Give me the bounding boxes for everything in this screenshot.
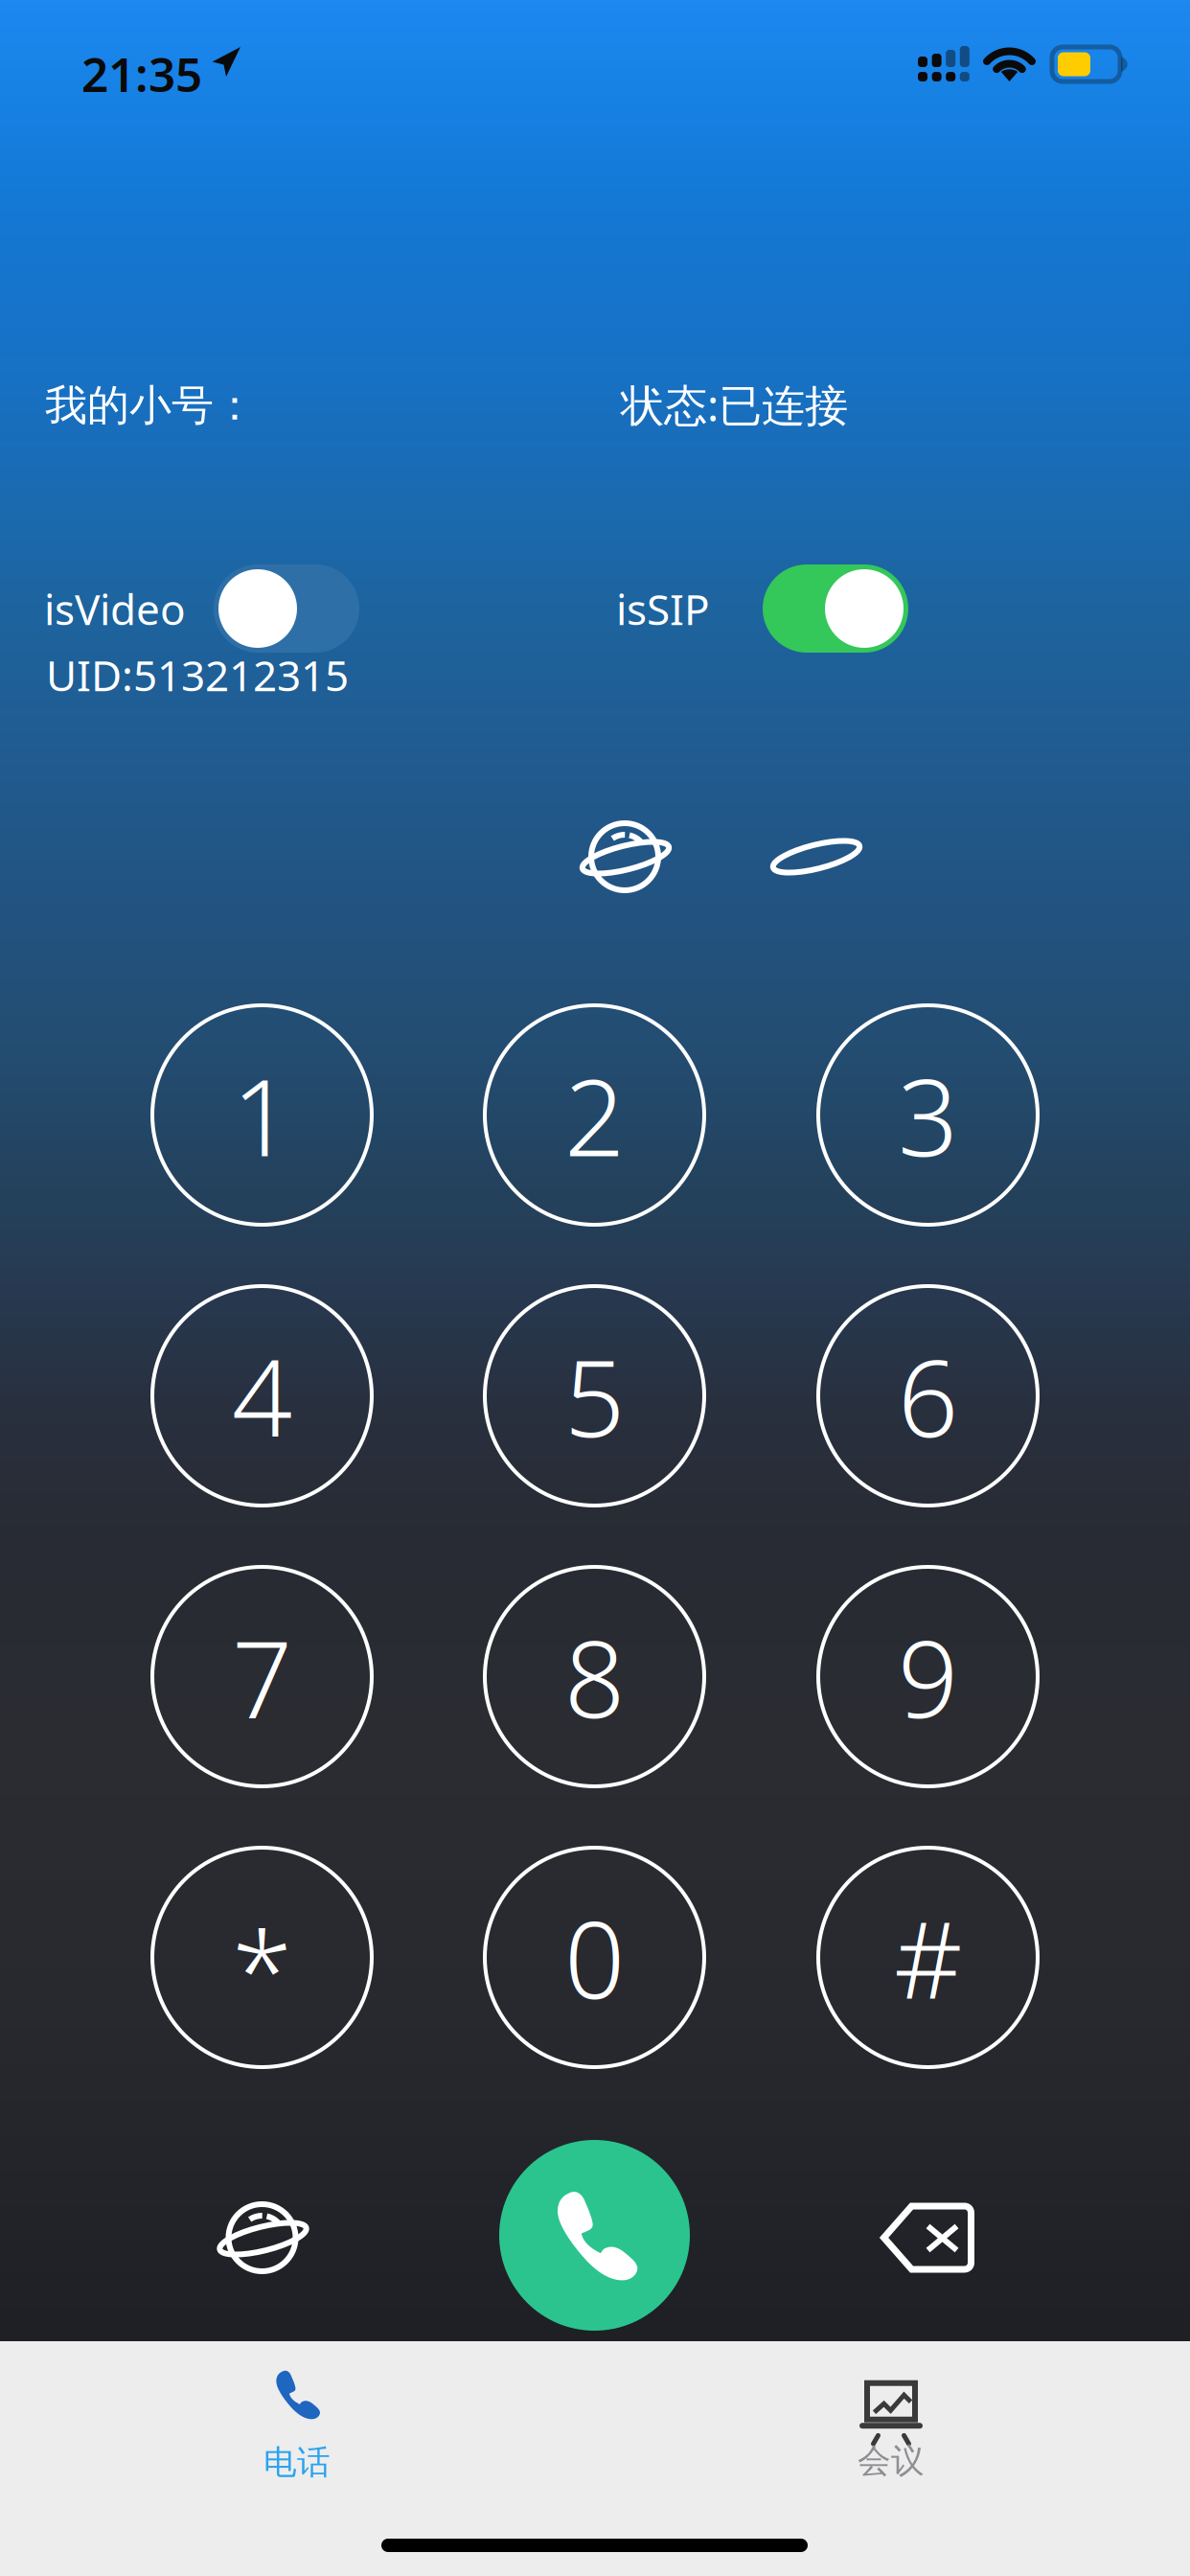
staticText: 1 <box>232 1045 292 1185</box>
staticText: * <box>232 1896 292 2042</box>
button[interactable]: 1 <box>152 1005 372 1225</box>
button[interactable]: 3 <box>818 1005 1038 1225</box>
button[interactable]: * <box>152 1848 372 2067</box>
button[interactable]: International dialing <box>212 2196 312 2280</box>
staticText: 2 <box>564 1045 625 1185</box>
staticText: 电话 <box>263 2442 331 2483</box>
staticText: isSIP <box>616 581 710 637</box>
button[interactable]: Delete <box>880 2202 975 2273</box>
button[interactable]: Call <box>499 2140 690 2331</box>
button[interactable]: 7 <box>152 1567 372 1786</box>
button[interactable]: 5 <box>485 1286 704 1506</box>
staticText: 4 <box>232 1325 292 1466</box>
staticText: 9 <box>898 1606 958 1747</box>
button[interactable]: # <box>818 1848 1038 2067</box>
button[interactable]: isSIP on <box>763 564 908 653</box>
staticText: 21:35 <box>81 42 202 105</box>
staticText: # <box>894 1887 962 2028</box>
button[interactable]: 6 <box>818 1286 1038 1506</box>
staticText: 状态:已连接 <box>621 376 848 433</box>
staticText: 5 <box>564 1325 625 1466</box>
staticText: isVideo <box>44 581 186 637</box>
staticText: 会议 <box>858 2441 925 2481</box>
staticText: 3 <box>898 1045 958 1185</box>
button[interactable]: isVideo off <box>214 564 359 653</box>
button[interactable]: 会议 <box>747 2358 1035 2493</box>
button[interactable]: 0 <box>485 1848 704 2067</box>
button[interactable]: 8 <box>485 1567 704 1786</box>
button[interactable]: 4 <box>152 1286 372 1506</box>
staticText: 我的小号： <box>45 379 256 431</box>
button[interactable]: 2 <box>485 1005 704 1225</box>
staticText: 0 <box>564 1887 625 2028</box>
button[interactable]: 9 <box>818 1567 1038 1786</box>
staticText: 7 <box>232 1606 292 1747</box>
staticText: UID:513212315 <box>46 647 349 703</box>
button[interactable]: 电话 <box>153 2358 441 2493</box>
staticText: 6 <box>898 1325 958 1466</box>
staticText: 8 <box>564 1606 625 1747</box>
